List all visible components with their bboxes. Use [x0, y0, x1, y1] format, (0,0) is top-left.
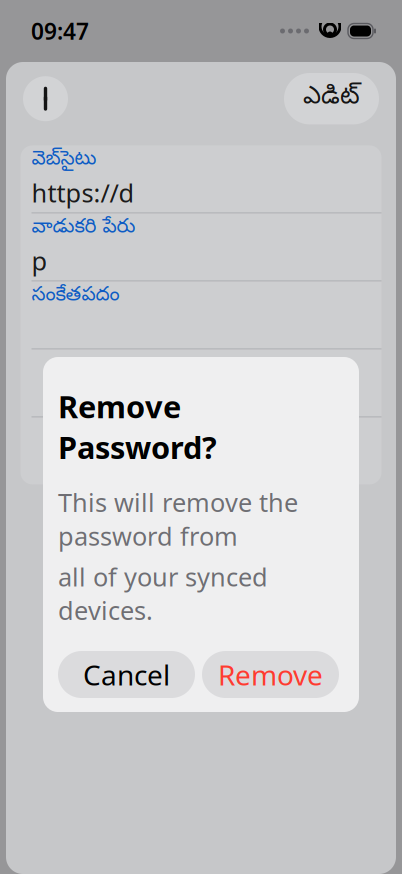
button[interactable]: ఎడిట్	[284, 73, 379, 124]
button[interactable]: వాడుకరి పేరు	[20, 213, 381, 280]
staticText: p	[31, 244, 47, 277]
button[interactable]: Cancel	[58, 651, 195, 698]
button[interactable]	[20, 417, 381, 484]
staticText: Remove Password?	[58, 386, 217, 467]
button[interactable]: Back	[23, 76, 68, 121]
button[interactable]: Remove	[202, 651, 339, 698]
staticText: సంకేతపదం	[31, 283, 119, 310]
button[interactable]: సంకేతపదం	[20, 281, 381, 348]
staticText: వెబ్‌సైటు	[31, 147, 96, 174]
staticText: This will remove the password from	[58, 485, 298, 553]
staticText: Cancel	[83, 656, 170, 693]
staticText: https://d	[31, 176, 134, 209]
button[interactable]: వెబ్‌సైటు	[20, 145, 381, 212]
staticText: all of your synced devices.	[58, 560, 268, 627]
staticText: వాడుకరి పేరు	[31, 215, 135, 242]
button[interactable]	[20, 349, 381, 416]
staticText: ఎడిట్	[303, 82, 360, 115]
staticText: Remove	[218, 656, 323, 693]
staticText: 09:47	[31, 16, 89, 46]
